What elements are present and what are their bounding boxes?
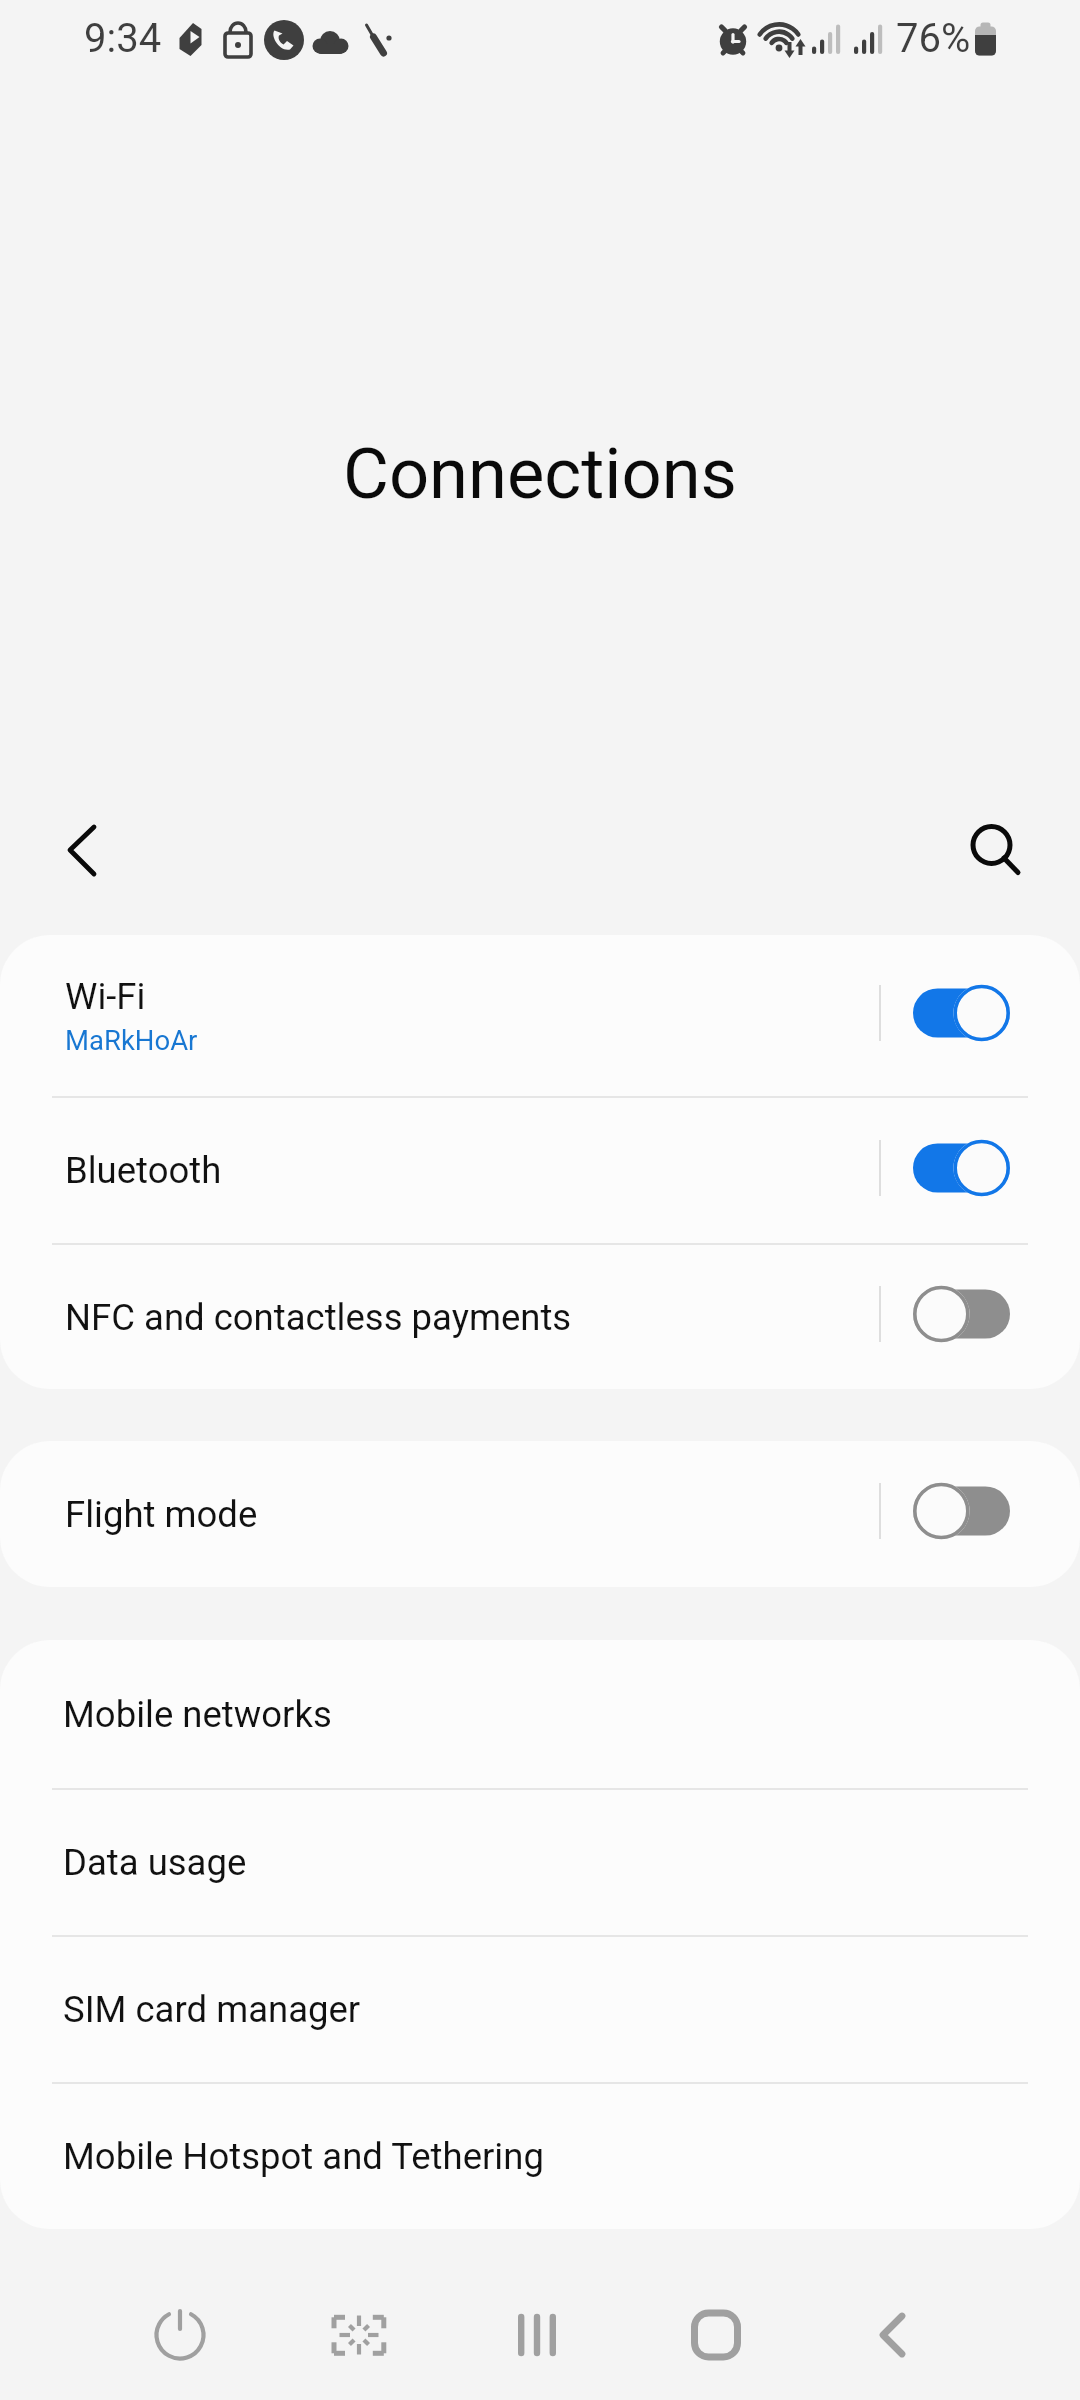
button[interactable]: Bluetooth bbox=[0, 1098, 1080, 1243]
button[interactable]: Back bbox=[839, 2250, 947, 2400]
staticText: NFC and contactless payments bbox=[65, 1296, 572, 1339]
button[interactable]: NFC and contactless payments bbox=[0, 1245, 1080, 1389]
button[interactable]: Search bbox=[942, 800, 1042, 900]
staticText: Data usage bbox=[63, 1841, 247, 1884]
button[interactable]: Data usage bbox=[0, 1790, 1080, 1935]
staticText: SIM card manager bbox=[63, 1988, 361, 2031]
button[interactable]: Mobile Hotspot and Tethering bbox=[0, 2084, 1080, 2229]
button[interactable]: Flight mode switch bbox=[879, 1441, 1080, 1587]
button[interactable]: SIM card manager bbox=[0, 1937, 1080, 2082]
button[interactable]: Screenshot bbox=[305, 2250, 413, 2400]
staticText: Connections bbox=[343, 433, 737, 503]
button[interactable]: Wi-Fi bbox=[0, 935, 1080, 1096]
button[interactable]: Flight mode bbox=[0, 1441, 1080, 1587]
button[interactable]: Bluetooth switch bbox=[879, 1098, 1080, 1243]
button[interactable]: NFC and contactless payments switch bbox=[879, 1245, 1080, 1389]
staticText: Mobile Hotspot and Tethering bbox=[63, 2135, 544, 2178]
button[interactable]: Home bbox=[662, 2250, 770, 2400]
button[interactable]: Mobile networks bbox=[0, 1640, 1080, 1788]
staticText: 76% bbox=[896, 15, 971, 62]
staticText: Mobile networks bbox=[63, 1693, 332, 1736]
staticText: Bluetooth bbox=[65, 1149, 222, 1192]
staticText: Wi-Fi bbox=[65, 975, 146, 1018]
button[interactable]: Back bbox=[34, 800, 134, 900]
button[interactable]: Recent apps bbox=[483, 2250, 591, 2400]
button[interactable]: Power bbox=[126, 2250, 234, 2400]
staticText: Flight mode bbox=[65, 1493, 258, 1536]
staticText: MaRkHoAr bbox=[65, 1024, 198, 1056]
staticText: 9:34 bbox=[84, 15, 162, 62]
button[interactable]: Wi-Fi switch bbox=[879, 935, 1080, 1096]
